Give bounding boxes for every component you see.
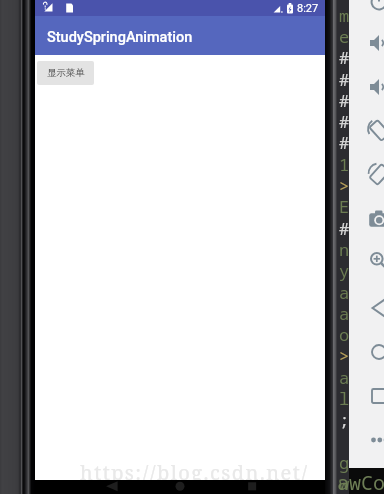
staticText: o [339, 323, 350, 346]
staticText: w [339, 472, 350, 494]
staticText: awCo [337, 469, 384, 494]
staticText: # [339, 46, 350, 69]
staticText: 8:27 [297, 2, 319, 15]
staticText: ; [339, 408, 350, 431]
staticText: StudySpringAnimation [47, 29, 193, 46]
staticText: e [339, 25, 350, 48]
staticText: > [339, 344, 350, 367]
button[interactable]: Home [367, 340, 384, 364]
staticText: # [339, 68, 350, 91]
staticText: # [339, 110, 350, 133]
staticText: E [339, 195, 350, 218]
button[interactable]: Volume down [367, 75, 384, 99]
staticText: a [339, 302, 350, 325]
staticText: # [339, 217, 350, 240]
staticText: 显示菜单 [47, 67, 85, 79]
staticText: m [339, 4, 350, 27]
button[interactable]: Rotate left [367, 118, 384, 142]
staticText: n [339, 238, 350, 261]
button[interactable]: Overview [367, 384, 384, 408]
button[interactable]: Volume up [367, 31, 384, 55]
button[interactable]: Zoom in [367, 249, 384, 273]
button[interactable]: Screenshot [367, 207, 384, 231]
button[interactable]: More options [367, 428, 384, 452]
staticText: l [339, 387, 350, 410]
staticText: > [339, 174, 350, 197]
staticText: g [339, 451, 350, 474]
button[interactable]: Power [367, 0, 384, 14]
staticText: # [339, 89, 350, 112]
staticText: 1 [339, 153, 350, 176]
staticText: a [339, 366, 350, 389]
staticText: y [339, 259, 350, 282]
button[interactable]: 显示菜单 [37, 61, 94, 85]
button[interactable]: Rotate right [367, 162, 384, 186]
staticText: # [339, 131, 350, 154]
staticText: https://blog.csdn.net/qingyongai [80, 459, 370, 486]
staticText: a [339, 281, 350, 304]
button[interactable]: Back [367, 296, 384, 320]
